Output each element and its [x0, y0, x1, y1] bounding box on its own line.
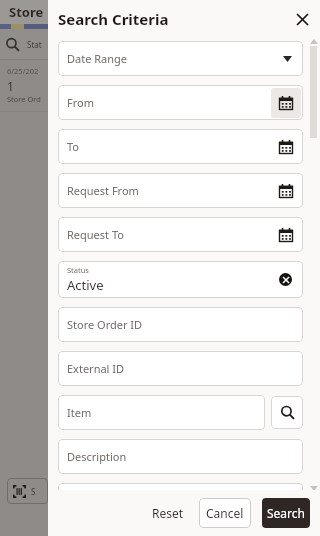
button[interactable]: Cancel: [199, 498, 251, 528]
button[interactable]: Description: [58, 439, 303, 474]
button[interactable]: Close: [289, 6, 315, 32]
button[interactable]: Item: [58, 395, 265, 430]
button[interactable]: Store Order ID: [58, 307, 303, 342]
button[interactable]: Request To: [58, 217, 303, 252]
button[interactable]: Pick date To: [271, 132, 301, 162]
staticText: Search Criteria: [58, 9, 169, 29]
staticText: S: [31, 486, 36, 497]
staticText: Store: [9, 3, 44, 21]
staticText: External ID: [67, 361, 125, 376]
button[interactable]: Search: [262, 498, 310, 528]
button[interactable]: From: [58, 85, 303, 120]
staticText: Active: [67, 276, 104, 294]
button[interactable]: Date Range: [58, 41, 303, 76]
button[interactable]: Reset: [152, 498, 184, 528]
staticText: 1: [7, 78, 14, 94]
staticText: Request To: [67, 227, 124, 242]
button[interactable]: External ID: [58, 351, 303, 386]
staticText: Date Range: [67, 51, 128, 66]
staticText: Store Order ID: [67, 317, 143, 332]
button[interactable]: To: [58, 129, 303, 164]
button[interactable]: Status: [58, 261, 303, 298]
button[interactable]: Request From: [58, 173, 303, 208]
staticText: From: [67, 95, 94, 110]
staticText: Request From: [67, 183, 139, 198]
button[interactable]: Pick date Request From: [271, 176, 301, 206]
staticText: Reset: [152, 505, 184, 521]
staticText: Item: [67, 405, 92, 420]
staticText: 6/25/202: [7, 66, 39, 76]
staticText: Cancel: [206, 505, 244, 521]
staticText: Status: [67, 265, 89, 275]
button[interactable]: Pick date Request To: [271, 220, 301, 250]
button[interactable]: Pick date From: [271, 88, 301, 118]
button[interactable]: Clear status: [279, 273, 292, 286]
staticText: Search: [267, 505, 305, 521]
staticText: Description: [67, 449, 127, 464]
button[interactable]: Scan: [7, 478, 48, 504]
staticText: Stat: [27, 39, 42, 50]
staticText: Store Ord: [7, 94, 41, 104]
button[interactable]: Search item: [271, 396, 303, 429]
button[interactable]: [58, 483, 303, 497]
staticText: To: [67, 139, 80, 154]
